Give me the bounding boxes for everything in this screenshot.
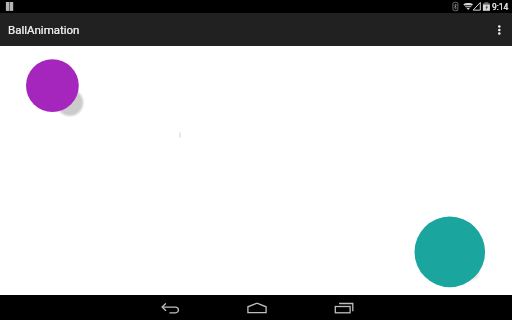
button[interactable]: Back [126,295,213,320]
button[interactable]: Recent apps [300,295,387,320]
button[interactable]: More options [486,13,512,46]
staticText: BallAnimation [8,23,80,36]
button[interactable]: Home [213,295,300,320]
staticText: 9:14 [492,2,509,12]
